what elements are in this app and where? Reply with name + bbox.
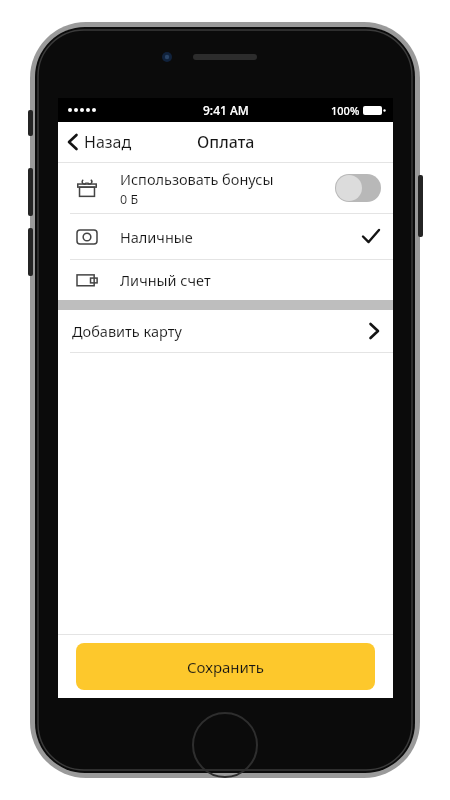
staticText: 0 Б <box>120 191 139 208</box>
staticText: Наличные <box>120 227 363 247</box>
staticText: Сохранить <box>187 657 265 677</box>
staticText: Использовать бонусы <box>120 169 274 189</box>
button[interactable]: Добавить карту <box>58 310 393 352</box>
button[interactable]: Наличные <box>58 214 393 259</box>
staticText: Назад <box>84 131 132 153</box>
button[interactable]: Сохранить <box>76 643 375 690</box>
button[interactable]: Использовать бонусы <box>58 163 393 213</box>
staticText: Личный счет <box>120 270 381 290</box>
staticText: 9:41 AM <box>203 102 249 118</box>
staticText: Добавить карту <box>72 321 369 341</box>
staticText: Оплата <box>197 131 255 153</box>
button[interactable]: Личный счет <box>58 260 393 300</box>
button[interactable]: Назад <box>58 125 142 159</box>
staticText: 100% <box>331 103 360 118</box>
button[interactable]: Использовать бонусы <box>335 174 381 202</box>
